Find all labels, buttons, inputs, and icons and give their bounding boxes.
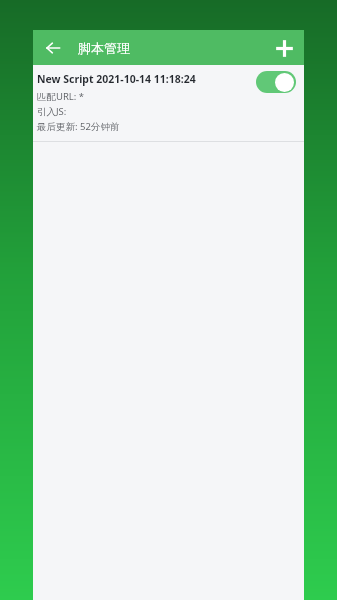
staticText: 引入JS: [37, 105, 67, 118]
button[interactable]: Back [38, 33, 68, 63]
button[interactable]: New Script 2021-10-14 11:18:24 [33, 65, 304, 141]
staticText: 最后更新: 52分钟前 [37, 120, 120, 133]
button[interactable]: Enable script [254, 69, 298, 95]
button[interactable]: Add script [268, 32, 300, 64]
staticText: 脚本管理 [78, 40, 130, 56]
staticText: New Script 2021-10-14 11:18:24 [37, 72, 196, 86]
staticText: 匹配URL: * [37, 90, 85, 103]
